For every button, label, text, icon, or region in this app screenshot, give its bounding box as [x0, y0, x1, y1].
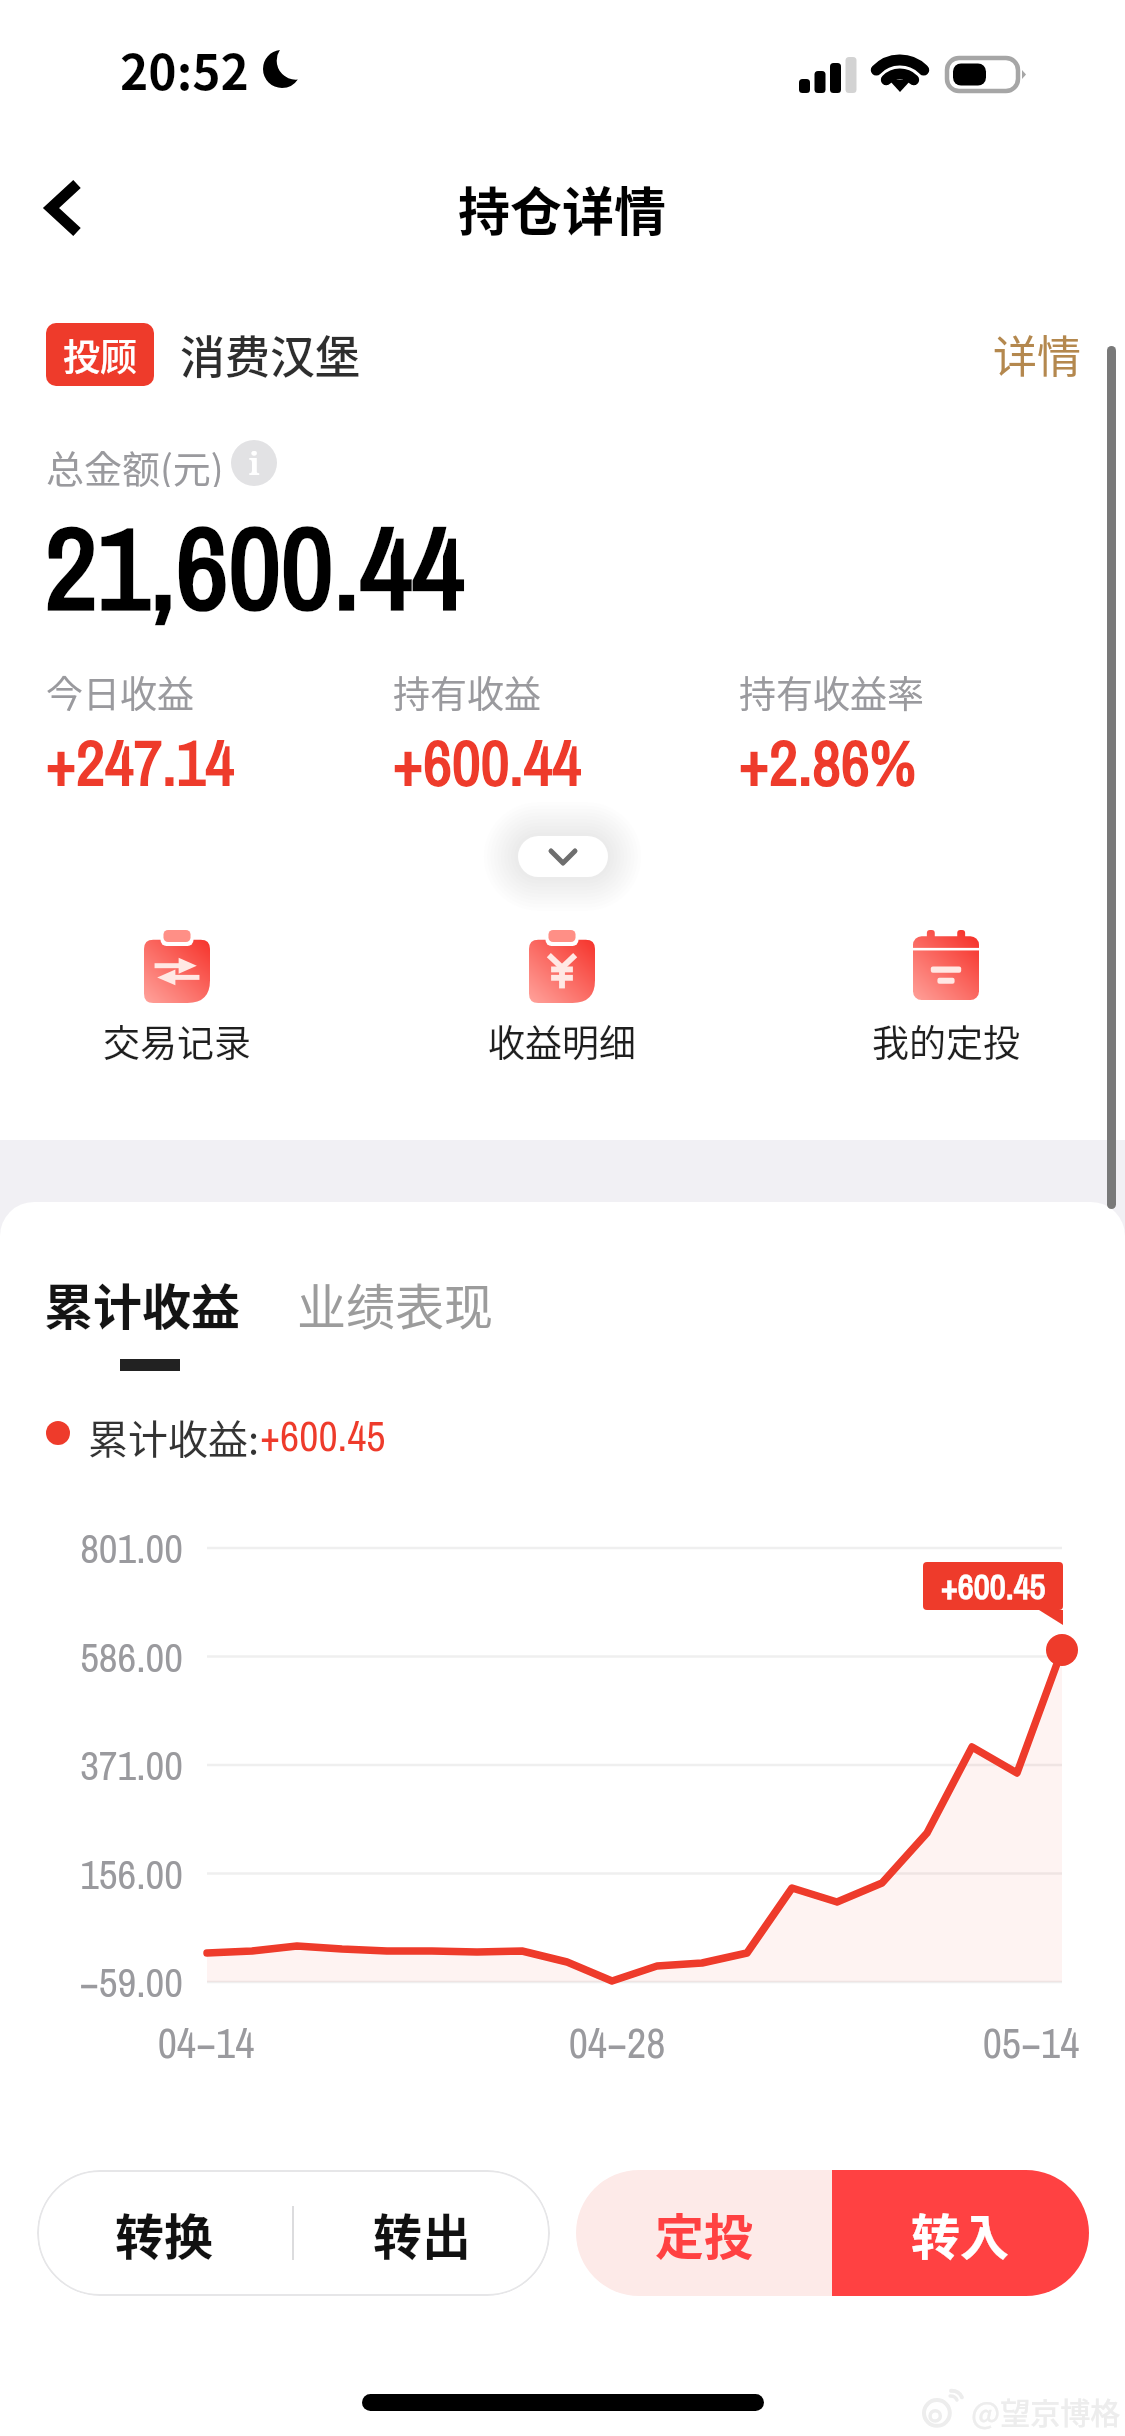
staticText: 定投 — [655, 2198, 754, 2269]
staticText: 详情 — [993, 322, 1081, 386]
staticText: 20:52 — [120, 34, 249, 104]
staticText: 投顾 — [63, 328, 137, 382]
staticText: 04−14 — [106, 2015, 306, 2072]
button[interactable]: 业绩表现 — [297, 1268, 494, 1339]
button[interactable]: 定投 — [576, 2170, 832, 2296]
staticText: 我的定投 — [872, 1014, 1020, 1068]
staticText: i — [249, 443, 260, 484]
staticText: +247.14 — [46, 720, 235, 805]
staticText: 05−14 — [931, 2015, 1125, 2072]
staticText: 累计收益 — [44, 1268, 241, 1339]
staticText: 今日收益 — [46, 665, 194, 719]
staticText: 371.00 — [0, 1738, 183, 1793]
button[interactable]: 收益明细 — [407, 930, 717, 1068]
staticText: 801.00 — [0, 1521, 183, 1576]
button[interactable]: 我的定投 — [791, 930, 1101, 1068]
staticText: 持有收益 — [393, 665, 541, 719]
staticText: +600.45 — [260, 1408, 386, 1458]
staticText: +600.45 — [941, 1563, 1046, 1610]
staticText: 21,600.44 — [45, 490, 465, 645]
staticText: 消费汉堡 — [180, 322, 361, 387]
button[interactable]: 交易记录 — [22, 930, 332, 1068]
button[interactable]: 详情 — [993, 322, 1081, 386]
button[interactable]: Back — [20, 165, 106, 251]
staticText: 转出 — [373, 2198, 472, 2269]
button[interactable]: 累计收益 — [44, 1268, 241, 1339]
button[interactable]: 转换 — [37, 2170, 292, 2296]
staticText: −59.00 — [0, 1955, 183, 2010]
button[interactable]: 转入 — [832, 2170, 1089, 2296]
staticText: 收益明细 — [488, 1014, 636, 1068]
staticText: 业绩表现 — [297, 1268, 494, 1339]
button[interactable]: Info — [231, 440, 277, 486]
staticText: 04−28 — [517, 2015, 717, 2072]
staticText: 累计收益: — [88, 1408, 260, 1458]
staticText: @望京博格 — [971, 2389, 1121, 2432]
button[interactable]: Expand — [518, 836, 608, 877]
staticText: +2.86% — [739, 720, 916, 805]
staticText: 持有收益率 — [739, 665, 924, 719]
staticText: +600.44 — [393, 720, 582, 805]
staticText: 总金额(元) — [46, 439, 224, 487]
staticText: 交易记录 — [103, 1014, 251, 1068]
button[interactable]: 转出 — [294, 2170, 550, 2296]
staticText: 转换 — [115, 2198, 214, 2269]
staticText: 586.00 — [0, 1630, 183, 1685]
staticText: 156.00 — [0, 1847, 183, 1902]
staticText: 转入 — [911, 2198, 1010, 2269]
staticText: 持仓详情 — [458, 171, 667, 246]
